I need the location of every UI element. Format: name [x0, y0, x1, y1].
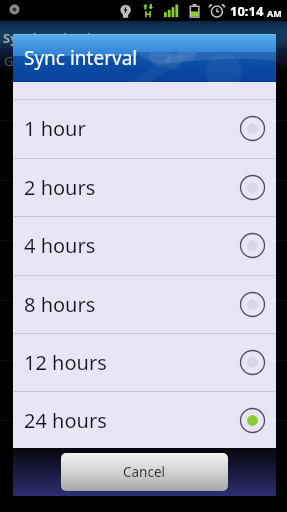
- staticText: Cancel: [123, 463, 166, 481]
- staticText: 12 hours: [24, 349, 240, 376]
- staticText: Synchronization: [3, 29, 108, 47]
- button[interactable]: 8 hours: [13, 275, 276, 334]
- staticText: 10:14: [230, 2, 264, 20]
- button[interactable]: 1 hour: [13, 99, 276, 158]
- button[interactable]: 24 hours: [13, 391, 276, 450]
- staticText: 8 hours: [24, 291, 240, 318]
- staticText: 24 hours: [24, 407, 240, 434]
- staticText: AM: [267, 7, 282, 19]
- staticText: Sync interval: [24, 45, 138, 71]
- staticText: 4 hours: [24, 232, 240, 259]
- button[interactable]: 4 hours: [13, 216, 276, 275]
- button[interactable]: 2 hours: [13, 158, 276, 217]
- button[interactable]: Cancel: [61, 453, 228, 491]
- staticText: 2 hours: [24, 174, 240, 201]
- staticText: G: [4, 52, 14, 70]
- staticText: 1 hour: [24, 115, 240, 142]
- button[interactable]: 12 hours: [13, 333, 276, 392]
